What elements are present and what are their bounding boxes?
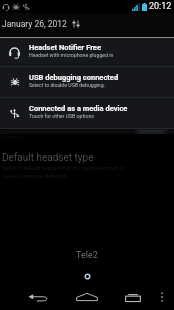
button[interactable]: Home — [75, 288, 99, 306]
staticText: January 26, 2012 — [2, 19, 67, 29]
button[interactable]: Recent apps — [123, 288, 143, 306]
staticText: listening — [2, 134, 23, 140]
staticText: Touch for other USB options — [29, 113, 94, 119]
button[interactable]: USB debugging connected — [0, 67, 174, 98]
button[interactable]: More options — [156, 288, 168, 306]
staticText: Connected as a media device — [29, 104, 128, 113]
staticText: 20:12 — [149, 1, 172, 12]
staticText: Headset with microphone plugged in — [29, 52, 114, 58]
staticText: Default headset type — [2, 152, 94, 164]
staticText: Headset Notifier Free — [29, 43, 101, 52]
staticText: Select to disable USB debugging. — [29, 82, 105, 88]
staticText: Select if default headset has microphone… — [2, 165, 125, 179]
staticText: Tele2 — [76, 250, 98, 261]
button[interactable]: Headset Notifier Free — [0, 38, 174, 67]
staticText: USB debugging connected — [29, 73, 119, 82]
button[interactable]: Back — [27, 288, 49, 306]
button[interactable]: Quick settings — [71, 19, 81, 29]
button[interactable]: Connected as a media device — [0, 98, 174, 129]
